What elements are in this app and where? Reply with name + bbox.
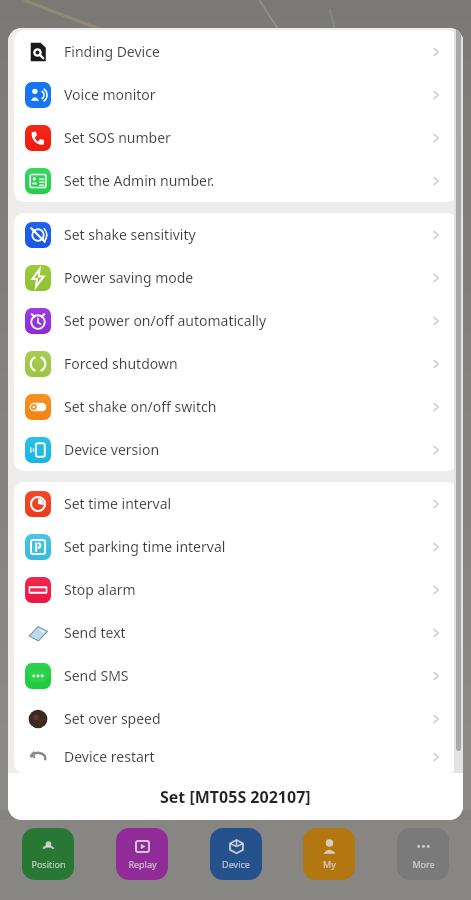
staticText: Set shake sensitivity — [64, 225, 196, 244]
staticText: Set power on/off automatically — [64, 311, 267, 330]
button[interactable]: My — [303, 828, 355, 880]
button[interactable]: Set the Admin number. — [14, 159, 457, 202]
button[interactable]: Finding Device — [14, 30, 457, 73]
button[interactable]: Device version — [14, 428, 457, 471]
staticText: Device restart — [64, 747, 155, 766]
button[interactable]: Set [MT05S 202107] — [8, 773, 463, 820]
button[interactable]: Set parking time interval — [14, 525, 457, 568]
staticText: Stop alarm — [64, 580, 136, 599]
staticText: Forced shutdown — [64, 354, 178, 373]
button[interactable]: Voice monitor — [14, 73, 457, 116]
staticText: Position — [31, 858, 66, 870]
button[interactable]: Replay — [116, 828, 168, 880]
staticText: Power saving mode — [64, 268, 194, 287]
staticText: More — [412, 858, 435, 870]
button[interactable]: Position — [22, 828, 74, 880]
button[interactable]: Set over speed — [14, 697, 457, 740]
button[interactable]: Send text — [14, 611, 457, 654]
button[interactable]: Set SOS number — [14, 116, 457, 159]
staticText: Set time interval — [64, 494, 172, 513]
button[interactable]: Set shake on/off switch — [14, 385, 457, 428]
staticText: Device — [222, 858, 250, 870]
button[interactable]: Power saving mode — [14, 256, 457, 299]
button[interactable]: Set power on/off automatically — [14, 299, 457, 342]
staticText: Finding Device — [64, 42, 160, 61]
staticText: Set shake on/off switch — [64, 397, 217, 416]
button[interactable]: Device restart — [14, 740, 457, 773]
staticText: Send SMS — [64, 666, 129, 685]
staticText: My — [323, 858, 336, 870]
staticText: Send text — [64, 623, 126, 642]
staticText: Set parking time interval — [64, 537, 226, 556]
button[interactable]: Set shake sensitivity — [14, 213, 457, 256]
button[interactable]: Set time interval — [14, 482, 457, 525]
staticText: Set the Admin number. — [64, 171, 215, 190]
staticText: Set [MT05S 202107] — [160, 786, 311, 808]
button[interactable]: More — [397, 828, 449, 880]
staticText: Device version — [64, 440, 160, 459]
staticText: Set over speed — [64, 709, 161, 728]
button[interactable]: Stop alarm — [14, 568, 457, 611]
staticText: Replay — [128, 858, 157, 870]
button[interactable]: Send SMS — [14, 654, 457, 697]
button[interactable]: Device — [210, 828, 262, 880]
button[interactable]: Forced shutdown — [14, 342, 457, 385]
staticText: Voice monitor — [64, 85, 156, 104]
staticText: Set SOS number — [64, 128, 171, 147]
